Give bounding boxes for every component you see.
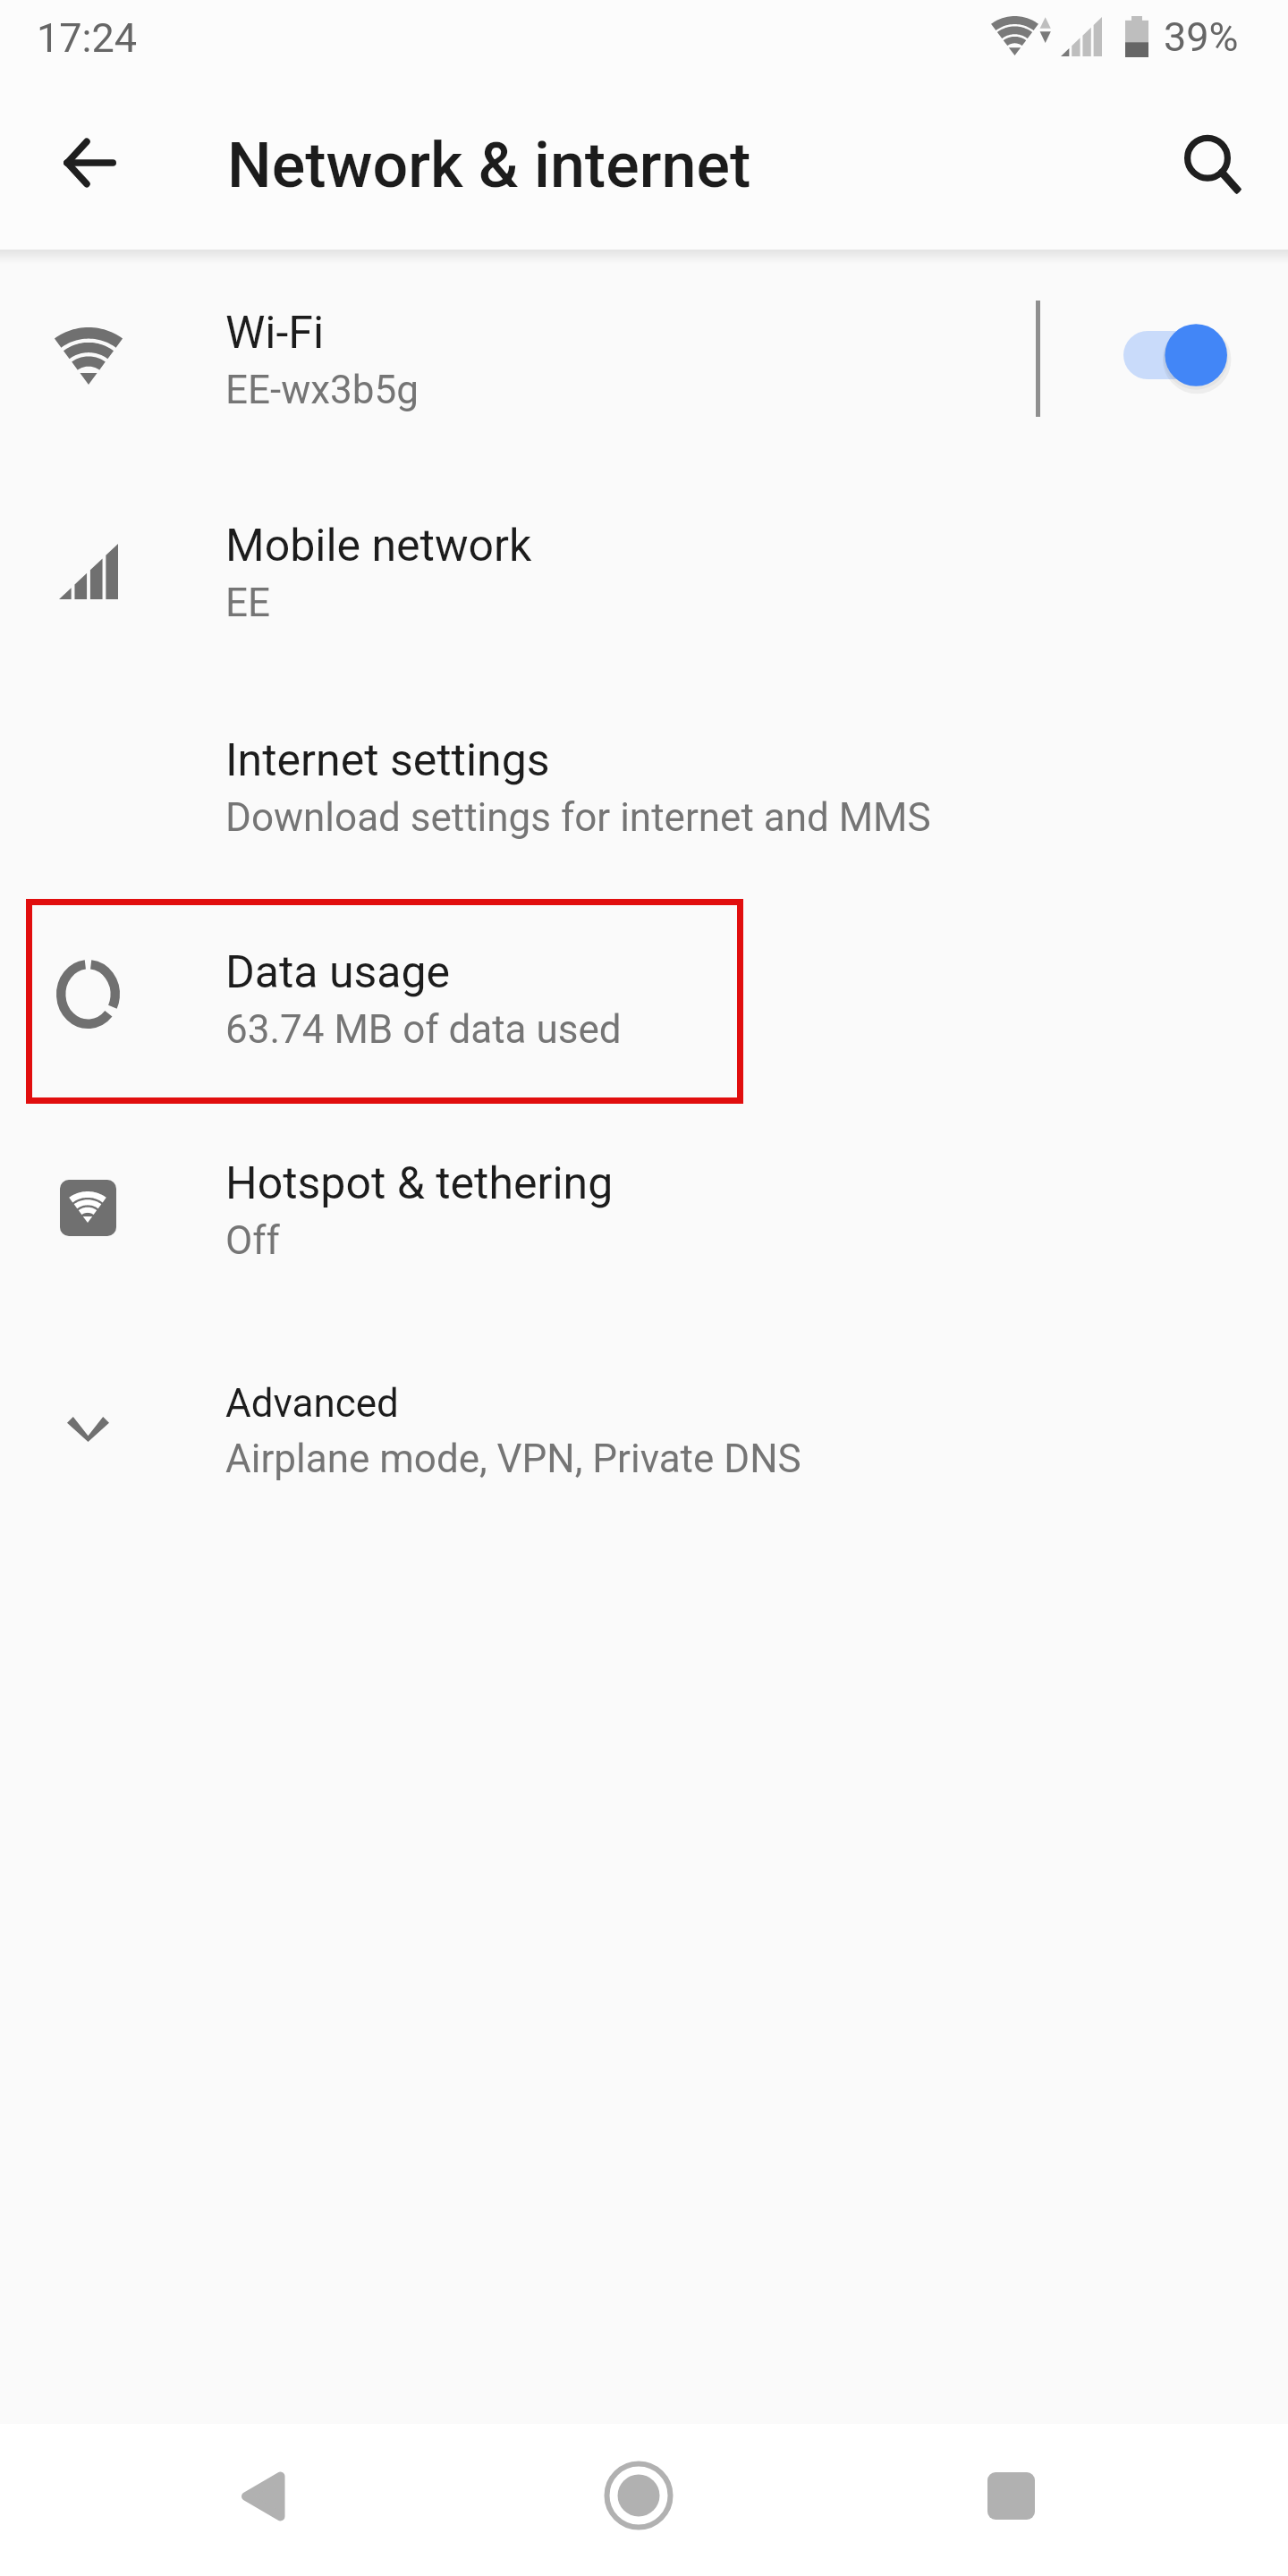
button[interactable]: Navigate up (52, 125, 127, 200)
button[interactable] (0, 678, 1288, 890)
button[interactable]: Home (585, 2442, 692, 2549)
button[interactable] (0, 1104, 1288, 1320)
staticText: Internet settings (225, 734, 550, 787)
staticText: 63.74 MB of data used (225, 1006, 622, 1053)
staticText: Off (225, 1217, 280, 1264)
button[interactable]: Search (1175, 128, 1250, 203)
staticText: Download settings for internet and MMS (225, 794, 931, 841)
staticText: Airplane mode, VPN, Private DNS (225, 1436, 801, 1482)
button[interactable]: Wi-Fi on (1109, 313, 1243, 397)
button[interactable]: Recent apps (957, 2442, 1064, 2549)
staticText: Advanced (225, 1380, 399, 1427)
button[interactable] (0, 250, 1288, 464)
staticText: EE (225, 580, 271, 626)
staticText: Data usage (225, 946, 451, 999)
button[interactable] (0, 464, 1288, 678)
staticText: 17:24 (37, 14, 138, 62)
staticText: EE-wx3b5g (225, 367, 419, 413)
staticText: Hotspot & tethering (225, 1157, 614, 1210)
staticText: Wi-Fi (225, 307, 325, 360)
staticText: Mobile network (225, 520, 532, 572)
button[interactable] (0, 890, 1288, 1104)
button[interactable]: Back (208, 2443, 316, 2550)
button[interactable] (0, 1320, 1288, 1535)
staticText: 39% (1164, 13, 1239, 61)
staticText: Network & internet (227, 129, 751, 202)
